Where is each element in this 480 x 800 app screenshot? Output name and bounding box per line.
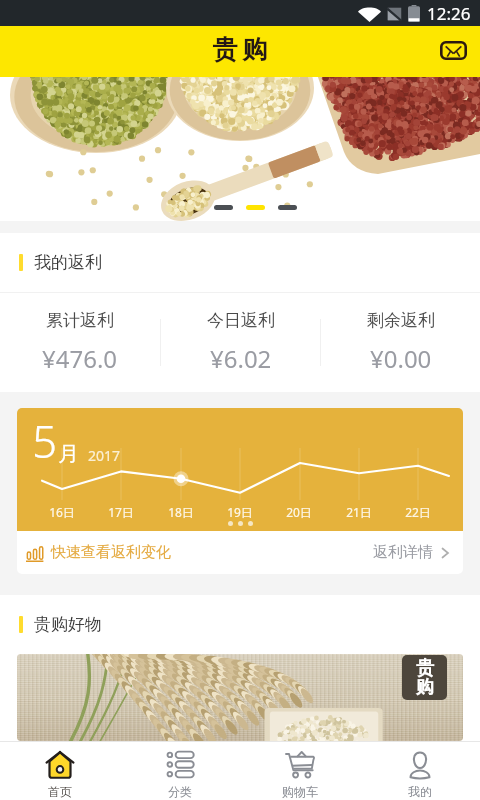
button[interactable]: 快速查看返利变化 <box>17 531 463 574</box>
button[interactable]: 我的 <box>360 741 480 800</box>
staticText: 分类 <box>168 784 192 799</box>
staticText: 贵购好物 <box>34 614 102 635</box>
button[interactable]: Messages <box>433 32 473 72</box>
staticText: 5 <box>32 411 58 471</box>
staticText: 17日 <box>105 504 137 520</box>
button[interactable]: 购物车 <box>240 741 360 800</box>
staticText: 剩余返利 <box>367 310 435 331</box>
staticText: 返利详情 <box>373 543 433 562</box>
staticText: 累计返利 <box>46 310 114 331</box>
staticText: 21日 <box>343 504 375 520</box>
staticText: 贵 购 <box>416 657 434 699</box>
staticText: 19日 <box>224 504 256 520</box>
staticText: 贵购 <box>210 34 270 65</box>
staticText: 16日 <box>46 504 78 520</box>
staticText: 首页 <box>48 784 72 799</box>
staticText: 购物车 <box>282 784 318 799</box>
staticText: ¥476.0 <box>42 342 118 375</box>
button[interactable]: 首页 <box>0 741 120 800</box>
button[interactable]: 今日返利 <box>161 293 320 392</box>
staticText: ¥0.00 <box>370 342 432 375</box>
staticText: 2017 <box>88 446 121 465</box>
button[interactable]: 分类 <box>120 741 240 800</box>
staticText: 今日返利 <box>207 310 275 331</box>
staticText: ¥6.02 <box>210 342 272 375</box>
staticText: 月 <box>58 441 79 467</box>
button[interactable]: 贵 购 <box>17 654 463 741</box>
staticText: 20日 <box>283 504 315 520</box>
button[interactable]: 剩余返利 <box>321 293 480 392</box>
staticText: 22日 <box>402 504 434 520</box>
staticText: 12:26 <box>427 2 471 25</box>
button[interactable]: 累计返利 <box>0 293 160 392</box>
staticText: 我的 <box>408 784 432 799</box>
staticText: 18日 <box>165 504 197 520</box>
staticText: 我的返利 <box>34 252 102 273</box>
staticText: 快速查看返利变化 <box>51 543 171 562</box>
